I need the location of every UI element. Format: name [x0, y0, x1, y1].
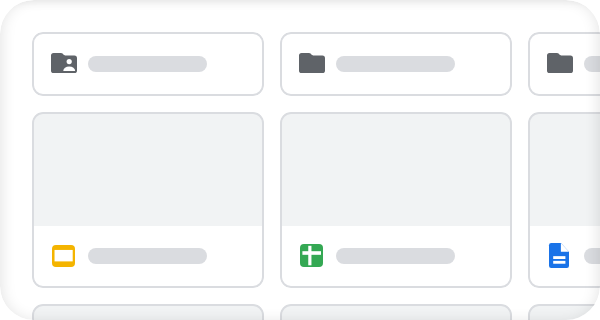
button[interactable]: Folder [528, 32, 600, 96]
button[interactable]: File [528, 112, 600, 288]
button[interactable]: File [32, 112, 264, 288]
button[interactable]: Folder [280, 32, 512, 96]
button[interactable]: File [280, 304, 512, 320]
button[interactable]: File [32, 304, 264, 320]
button[interactable]: Shared folder [32, 32, 264, 96]
button[interactable]: File [528, 304, 600, 320]
button[interactable]: File [280, 112, 512, 288]
